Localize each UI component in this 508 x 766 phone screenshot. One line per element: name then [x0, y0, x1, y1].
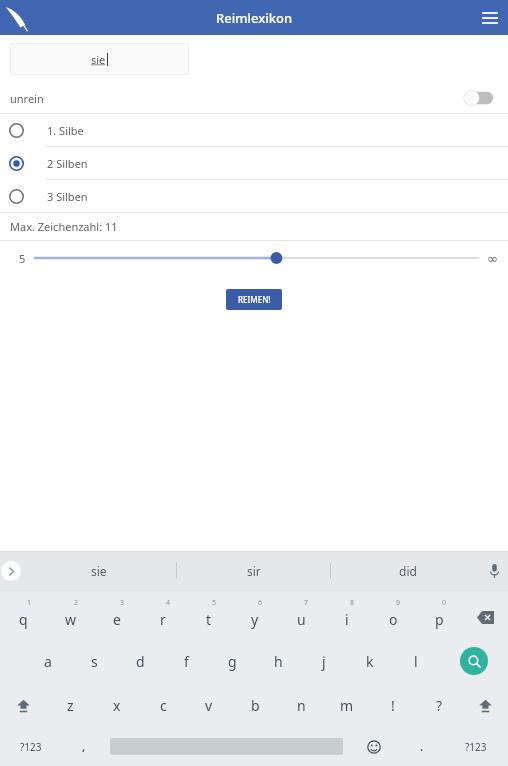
- staticText: m: [340, 696, 354, 715]
- button[interactable]: z: [47, 683, 94, 727]
- staticText: c: [160, 696, 167, 715]
- button[interactable]: Menu: [472, 0, 508, 35]
- button[interactable]: 3 Silben: [0, 180, 508, 212]
- staticText: k: [366, 652, 374, 671]
- staticText: y: [251, 610, 259, 629]
- button[interactable]: 7: [278, 595, 324, 639]
- button[interactable]: Space: [105, 727, 348, 766]
- button[interactable]: f: [163, 639, 209, 683]
- button[interactable]: ?123: [0, 727, 62, 766]
- staticText: REIMEN!: [238, 294, 271, 305]
- staticText: 0: [442, 598, 447, 608]
- button[interactable]: n: [278, 683, 324, 727]
- staticText: 4: [166, 598, 171, 608]
- staticText: .: [420, 739, 424, 754]
- staticText: 1: [27, 598, 32, 608]
- staticText: ∞: [487, 251, 498, 266]
- button[interactable]: 9: [370, 595, 416, 639]
- staticText: r: [160, 610, 166, 629]
- staticText: z: [67, 696, 74, 715]
- button[interactable]: s: [71, 639, 117, 683]
- staticText: w: [65, 610, 77, 629]
- staticText: n: [297, 696, 306, 715]
- staticText: 2 Silben: [47, 156, 88, 171]
- button[interactable]: 2 Silben: [0, 147, 508, 179]
- button[interactable]: sie: [10, 43, 189, 75]
- staticText: sie: [91, 52, 106, 67]
- staticText: did: [399, 563, 417, 579]
- button[interactable]: x: [94, 683, 140, 727]
- button[interactable]: Search: [439, 639, 508, 683]
- staticText: v: [205, 696, 213, 715]
- button[interactable]: 1: [0, 595, 47, 639]
- button[interactable]: ?123: [443, 727, 508, 766]
- staticText: x: [113, 696, 121, 715]
- button[interactable]: a: [24, 639, 71, 683]
- staticText: sie: [91, 563, 107, 579]
- staticText: 5: [212, 598, 217, 608]
- button[interactable]: j: [301, 639, 347, 683]
- button[interactable]: 8: [324, 595, 370, 639]
- staticText: 6: [258, 598, 263, 608]
- staticText: f: [184, 652, 189, 671]
- staticText: j: [322, 652, 326, 671]
- button[interactable]: !: [370, 683, 416, 727]
- staticText: p: [435, 610, 444, 629]
- button[interactable]: Backspace: [462, 595, 508, 639]
- button[interactable]: c: [140, 683, 186, 727]
- staticText: i: [345, 610, 349, 629]
- button[interactable]: sie: [22, 552, 176, 590]
- staticText: b: [251, 696, 260, 715]
- staticText: ?123: [20, 740, 42, 754]
- button[interactable]: Voice input: [480, 552, 508, 590]
- staticText: s: [91, 652, 98, 671]
- staticText: q: [19, 610, 28, 629]
- button[interactable]: d: [117, 639, 163, 683]
- button[interactable]: unrein: [0, 83, 508, 113]
- staticText: 8: [350, 598, 355, 608]
- button[interactable]: Shift: [0, 683, 47, 727]
- staticText: sir: [247, 563, 261, 579]
- button[interactable]: More suggestions: [1, 561, 21, 581]
- staticText: u: [297, 610, 306, 629]
- staticText: a: [44, 652, 52, 671]
- button[interactable]: Shift: [462, 683, 508, 727]
- staticText: unrein: [10, 91, 44, 106]
- staticText: ,: [82, 739, 86, 754]
- staticText: 1. Silbe: [47, 123, 84, 138]
- button[interactable]: 5: [186, 595, 232, 639]
- button[interactable]: 3: [94, 595, 140, 639]
- button[interactable]: m: [324, 683, 370, 727]
- staticText: Max. Zeichenzahl: 11: [10, 219, 118, 234]
- button[interactable]: 0: [416, 595, 462, 639]
- button[interactable]: sir: [177, 552, 330, 590]
- button[interactable]: h: [255, 639, 301, 683]
- staticText: 7: [304, 598, 309, 608]
- staticText: l: [414, 652, 418, 671]
- button[interactable]: ?: [416, 683, 462, 727]
- button[interactable]: .: [400, 727, 443, 766]
- staticText: 9: [396, 598, 401, 608]
- button[interactable]: 6: [232, 595, 278, 639]
- button[interactable]: 1. Silbe: [0, 114, 508, 146]
- button[interactable]: Emoji: [348, 727, 400, 766]
- button[interactable]: g: [209, 639, 255, 683]
- button[interactable]: 2: [47, 595, 94, 639]
- button[interactable]: did: [331, 552, 484, 590]
- staticText: ?123: [465, 740, 487, 754]
- button[interactable]: k: [347, 639, 393, 683]
- staticText: t: [206, 610, 212, 629]
- button[interactable]: b: [232, 683, 278, 727]
- staticText: d: [136, 652, 145, 671]
- button[interactable]: 5: [0, 241, 508, 275]
- staticText: 5: [19, 251, 26, 266]
- button[interactable]: ,: [62, 727, 105, 766]
- staticText: o: [389, 610, 398, 629]
- button[interactable]: REIMEN!: [226, 289, 282, 310]
- staticText: !: [391, 696, 395, 715]
- staticText: e: [113, 610, 121, 629]
- staticText: Reimlexikon: [216, 9, 293, 27]
- button[interactable]: l: [393, 639, 439, 683]
- button[interactable]: v: [186, 683, 232, 727]
- button[interactable]: 4: [140, 595, 186, 639]
